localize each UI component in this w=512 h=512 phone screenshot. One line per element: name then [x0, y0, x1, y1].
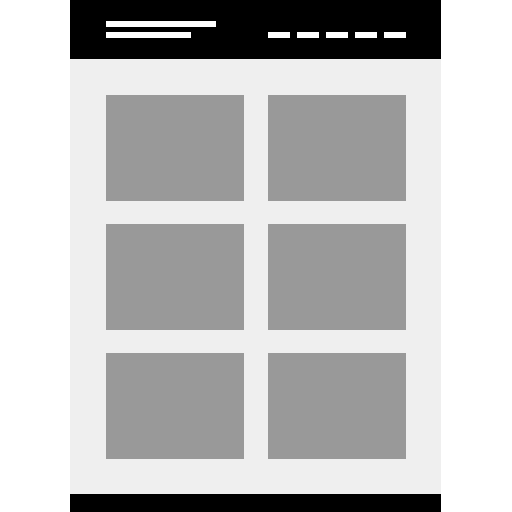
button[interactable]: Title [106, 21, 216, 38]
